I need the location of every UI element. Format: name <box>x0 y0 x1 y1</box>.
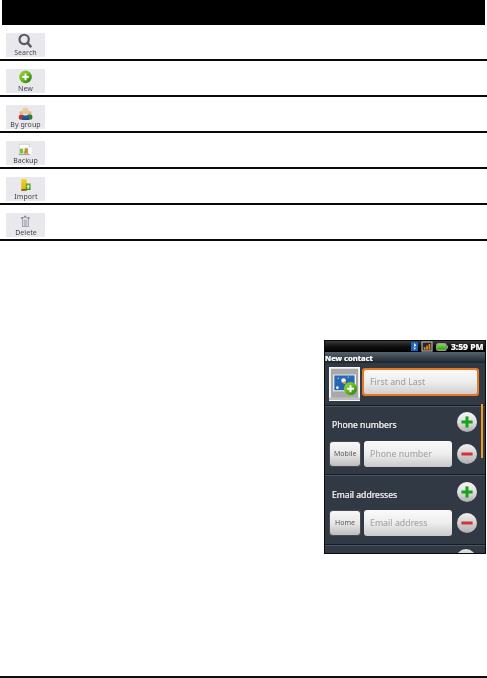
button[interactable]: Add Phone numbers <box>457 412 477 432</box>
button[interactable]: Delete <box>0 205 487 241</box>
button[interactable]: Email address <box>364 510 452 536</box>
staticText: New <box>18 84 33 94</box>
button[interactable]: Mobile <box>330 442 360 466</box>
staticText: Delete <box>15 228 37 238</box>
staticText: Phone numbers <box>332 419 397 431</box>
staticText: Search <box>14 48 37 58</box>
button[interactable]: Import <box>0 169 487 205</box>
staticText: Phone number <box>370 448 432 460</box>
button[interactable]: Search <box>0 25 487 61</box>
staticText: By group <box>10 120 41 130</box>
button[interactable]: Remove Home <box>457 513 477 533</box>
button[interactable]: Remove Mobile <box>457 444 477 464</box>
staticText: Home <box>335 518 355 528</box>
button[interactable]: Phone number <box>364 441 452 467</box>
button[interactable]: Email addresses <box>325 485 485 505</box>
staticText: New contact <box>325 353 373 363</box>
staticText: Mobile <box>334 449 357 459</box>
button[interactable]: Home <box>330 511 360 535</box>
button[interactable]: Phone numbers <box>325 415 485 435</box>
staticText: 3:59 PM <box>451 341 484 352</box>
staticText: Email addresses <box>332 489 398 501</box>
staticText: Import <box>14 192 38 202</box>
staticText: Email address <box>370 517 428 529</box>
button[interactable]: Add Email addresses <box>457 482 477 502</box>
button[interactable]: Backup <box>0 133 487 169</box>
button[interactable]: By group <box>0 97 487 133</box>
staticText: Backup <box>13 156 38 166</box>
button[interactable]: New <box>0 61 487 97</box>
staticText: First and Last <box>370 376 426 388</box>
